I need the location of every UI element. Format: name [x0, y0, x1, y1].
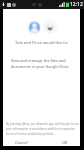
staticText: By pressing Allow, you allow this app an… [6, 122, 79, 136]
staticText: OK [62, 140, 68, 145]
button[interactable]: Account [27, 20, 41, 34]
button[interactable]: OK [60, 139, 70, 146]
staticText: Cancel [15, 140, 28, 145]
staticText: 12:12 [70, 1, 83, 8]
staticText: Tula and Drive would like to: [15, 40, 68, 45]
staticText: View and manage the files and documents … [11, 58, 69, 69]
button[interactable]: Drive app icon [43, 20, 57, 34]
button[interactable]: Cancel [13, 139, 30, 146]
